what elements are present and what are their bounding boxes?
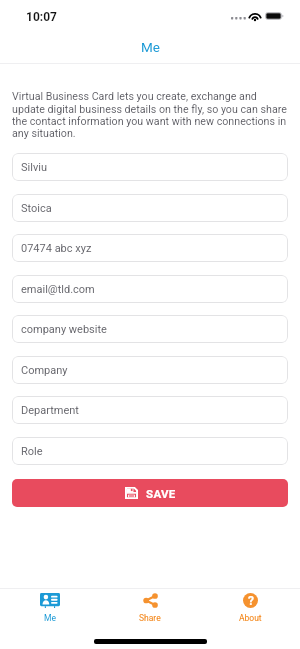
staticText: Share — [139, 613, 161, 623]
button[interactable]: Company — [12, 356, 288, 384]
staticText: Stoica — [21, 202, 52, 215]
button[interactable]: SAVE — [12, 479, 288, 507]
button[interactable]: Role — [12, 437, 288, 465]
button[interactable]: email@tld.com — [12, 275, 288, 303]
staticText: Virtual Business Card lets you create, e… — [12, 90, 287, 139]
button[interactable]: Stoica — [12, 194, 288, 222]
button[interactable]: Me — [0, 589, 100, 623]
button[interactable]: About — [200, 589, 300, 623]
button[interactable]: Me — [141, 39, 160, 55]
staticText: email@tld.com — [21, 283, 95, 296]
staticText: company website — [21, 323, 107, 336]
staticText: Silviu — [21, 161, 47, 174]
staticText: Role — [21, 445, 43, 458]
staticText: 07474 abc xyz — [21, 242, 92, 255]
other: Share — [143, 593, 158, 608]
button[interactable]: company website — [12, 315, 288, 343]
staticText: Me — [44, 613, 56, 623]
staticText: Department — [21, 404, 79, 417]
other: About — [243, 593, 258, 608]
other: Me — [40, 593, 60, 608]
button[interactable]: Silviu — [12, 153, 288, 181]
staticText: Me — [141, 39, 160, 55]
button[interactable]: Department — [12, 396, 288, 424]
staticText: About — [239, 613, 262, 623]
staticText: Company — [21, 364, 68, 377]
staticText: ? — [248, 594, 254, 608]
button[interactable]: 07474 abc xyz — [12, 234, 288, 262]
staticText: 10:07 — [26, 10, 57, 24]
staticText: SAVE — [146, 487, 176, 500]
button[interactable]: Share — [100, 589, 200, 623]
